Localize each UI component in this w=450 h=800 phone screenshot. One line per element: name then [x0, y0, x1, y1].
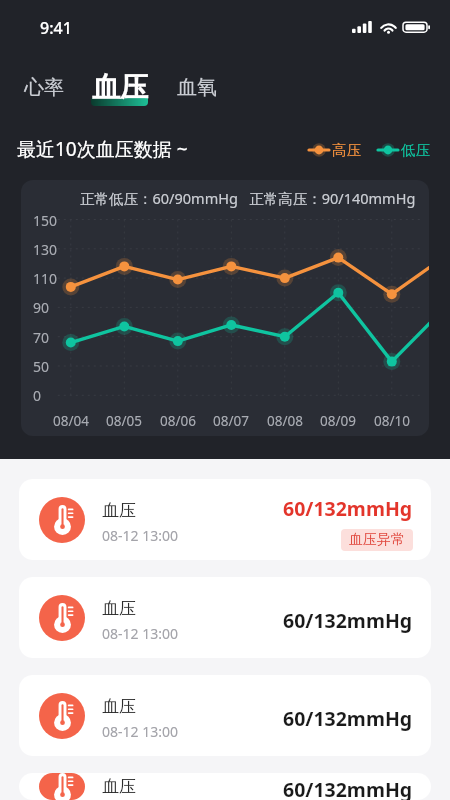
staticText: 08-12 13:00: [102, 526, 178, 545]
staticText: 最近10次血压数据 ~: [17, 136, 188, 162]
staticText: 60/132mmHg: [283, 495, 413, 522]
staticText: 08/08: [267, 412, 303, 430]
staticText: 08/10: [374, 412, 410, 430]
other: Blood pressure record: [54, 603, 73, 633]
button[interactable]: 血压: [91, 65, 148, 111]
staticText: 60/132mmHg: [283, 776, 413, 800]
staticText: 08/05: [106, 412, 142, 430]
other: Blood pressure record: [54, 505, 73, 535]
staticText: 9:41: [40, 17, 72, 39]
staticText: 110: [33, 269, 58, 288]
staticText: 0: [33, 386, 42, 405]
button[interactable]: 心率: [13, 69, 75, 106]
staticText: 血压: [102, 696, 136, 717]
staticText: 血压: [102, 598, 136, 619]
staticText: 70: [33, 328, 50, 347]
button[interactable]: 低压: [378, 141, 430, 159]
staticText: 低压: [401, 141, 430, 159]
staticText: 08/07: [213, 412, 249, 430]
staticText: 血压异常: [349, 531, 405, 549]
staticText: 心率: [24, 75, 64, 100]
staticText: 血压: [102, 776, 136, 797]
staticText: 08/09: [320, 412, 356, 430]
staticText: 08-12 13:00: [102, 624, 178, 643]
staticText: 60/132mmHg: [283, 607, 413, 634]
button[interactable]: 高压: [309, 141, 361, 159]
staticText: 150: [33, 211, 58, 230]
other: Blood pressure record: [54, 701, 73, 731]
staticText: 60/132mmHg: [283, 705, 413, 732]
staticText: 90: [33, 298, 50, 317]
other: Blood pressure record: [54, 773, 73, 800]
staticText: 高压: [332, 141, 361, 159]
staticText: 血氧: [177, 75, 217, 100]
button[interactable]: 血氧: [166, 69, 228, 106]
staticText: 正常低压：60/90mmHg 正常高压：90/140mmHg: [80, 188, 416, 208]
staticText: 130: [33, 240, 58, 259]
staticText: 50: [33, 357, 50, 376]
button[interactable]: Blood pressure record: [19, 479, 431, 560]
staticText: 血压: [102, 500, 136, 521]
button[interactable]: Blood pressure record: [19, 577, 431, 658]
staticText: 08/04: [53, 412, 89, 430]
staticText: 08/06: [160, 412, 196, 430]
button[interactable]: Blood pressure record: [19, 675, 431, 756]
staticText: 血压: [92, 70, 148, 105]
staticText: 08-12 13:00: [102, 722, 178, 741]
button[interactable]: Blood pressure record: [19, 773, 431, 800]
